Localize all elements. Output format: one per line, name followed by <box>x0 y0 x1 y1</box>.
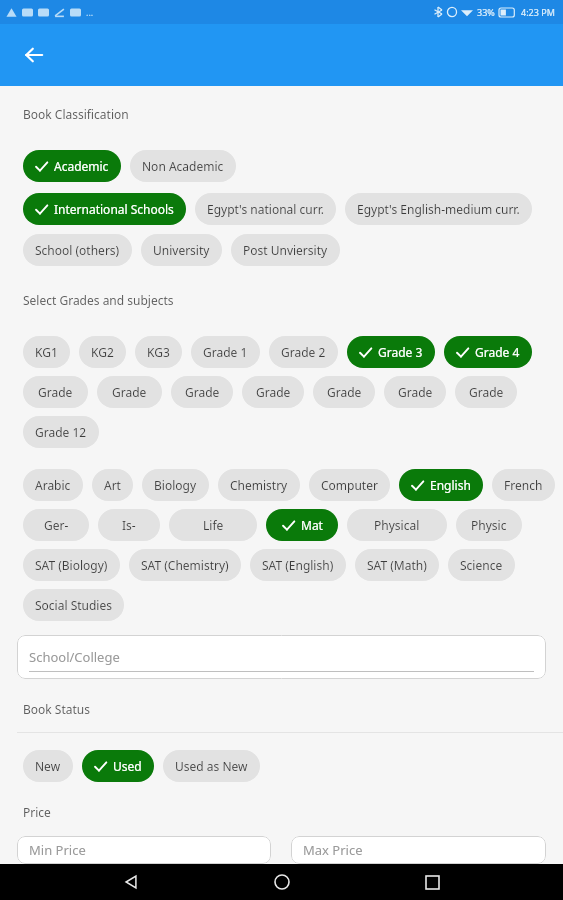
button[interactable]: Max Price <box>291 836 546 864</box>
button[interactable]: Is- <box>98 509 160 541</box>
staticText: International Schools <box>54 201 174 217</box>
button[interactable]: International Schools <box>23 193 186 225</box>
staticText: Social Studies <box>35 597 112 613</box>
button[interactable]: KG1 <box>23 336 70 368</box>
staticText: Grade <box>327 384 362 400</box>
button[interactable]: KG2 <box>79 336 126 368</box>
staticText: Arabic <box>35 477 71 493</box>
staticText: 33% <box>477 6 495 18</box>
staticText: Egypt's English-medium curr. <box>357 201 520 217</box>
button[interactable]: New <box>23 750 73 782</box>
staticText: SAT (Chemistry) <box>141 557 229 573</box>
staticText: SAT (English) <box>262 557 334 573</box>
button[interactable]: Grade 2 <box>269 336 338 368</box>
staticText: Chemistry <box>230 477 288 493</box>
staticText: Grade 3 <box>378 344 423 360</box>
button[interactable]: Computer <box>309 469 390 501</box>
button[interactable]: Arabic <box>23 469 83 501</box>
button[interactable]: Min Price <box>17 836 271 864</box>
button[interactable]: Egypt's national curr. <box>195 193 336 225</box>
staticText: Select Grades and subjects <box>23 292 174 308</box>
button[interactable]: Grade 1 <box>191 336 260 368</box>
button[interactable]: SAT (Chemistry) <box>129 549 241 581</box>
staticText: SAT (Biology) <box>35 557 108 573</box>
staticText: Grade 12 <box>35 424 87 440</box>
staticText: Grade 1 <box>203 344 248 360</box>
staticText: Grade <box>185 384 220 400</box>
staticText: Grade 2 <box>281 344 326 360</box>
staticText: Science <box>460 557 503 573</box>
staticText: New <box>35 758 61 774</box>
button[interactable]: Mat <box>266 509 338 541</box>
button[interactable]: Social Studies <box>23 589 124 621</box>
staticText: Academic <box>54 158 109 174</box>
staticText: University <box>153 242 210 258</box>
staticText: Used <box>113 758 142 774</box>
staticText: SAT (Math) <box>367 557 427 573</box>
button[interactable]: Grade <box>242 376 304 408</box>
button[interactable]: Chemistry <box>218 469 300 501</box>
button[interactable]: School (others) <box>23 234 132 266</box>
staticText: Egypt's national curr. <box>207 201 324 217</box>
button[interactable]: Academic <box>23 150 121 182</box>
button[interactable]: Used as New <box>163 750 260 782</box>
staticText: Book Classification <box>23 106 129 122</box>
button[interactable]: Post Unviersity <box>231 234 340 266</box>
button[interactable]: SAT (English) <box>250 549 346 581</box>
button[interactable]: Physic <box>456 509 522 541</box>
button[interactable]: School/College <box>17 635 546 679</box>
button[interactable]: Grade <box>313 376 375 408</box>
staticText: Price <box>23 804 51 820</box>
button[interactable]: Grade <box>23 376 88 408</box>
staticText: Grade <box>398 384 433 400</box>
button[interactable]: SAT (Math) <box>355 549 439 581</box>
staticText: Grade <box>112 384 147 400</box>
staticText: Art <box>104 477 121 493</box>
button[interactable]: Egypt's English-medium curr. <box>345 193 532 225</box>
button[interactable]: Back <box>111 864 151 900</box>
staticText: Physical <box>374 517 420 533</box>
button[interactable]: Grade <box>384 376 446 408</box>
button[interactable]: Grade 3 <box>347 336 435 368</box>
staticText: Max Price <box>303 841 363 859</box>
staticText: Grade <box>38 384 73 400</box>
staticText: ... <box>86 6 94 18</box>
button[interactable]: Biology <box>142 469 209 501</box>
staticText: Grade <box>469 384 504 400</box>
button[interactable]: KG3 <box>135 336 182 368</box>
staticText: Physic <box>471 517 507 533</box>
button[interactable]: Science <box>448 549 515 581</box>
staticText: Book Status <box>23 701 90 717</box>
staticText: Ger- <box>44 517 69 533</box>
button[interactable]: Used <box>82 750 154 782</box>
button[interactable]: English <box>399 469 483 501</box>
button[interactable]: French <box>492 469 555 501</box>
button[interactable]: University <box>141 234 222 266</box>
staticText: Grade 4 <box>475 344 520 360</box>
staticText: Min Price <box>29 841 86 859</box>
button[interactable]: Grade 12 <box>23 416 99 448</box>
staticText: Post Unviersity <box>243 242 328 258</box>
button[interactable]: Grade 4 <box>444 336 532 368</box>
staticText: KG1 <box>35 344 58 360</box>
button[interactable]: Grade <box>171 376 233 408</box>
button[interactable]: Back <box>12 33 56 77</box>
button[interactable]: Life <box>169 509 257 541</box>
button[interactable]: SAT (Biology) <box>23 549 120 581</box>
button[interactable]: Grade <box>97 376 162 408</box>
staticText: Used as New <box>175 758 248 774</box>
button[interactable]: Grade <box>455 376 517 408</box>
staticText: Biology <box>154 477 197 493</box>
staticText: Mat <box>301 517 323 533</box>
button[interactable]: Art <box>92 469 133 501</box>
button[interactable]: Recents <box>412 864 452 900</box>
button[interactable]: Home <box>262 864 302 900</box>
staticText: Life <box>203 517 224 533</box>
staticText: School (others) <box>35 242 120 258</box>
button[interactable]: Non Academic <box>130 150 236 182</box>
staticText: French <box>504 477 543 493</box>
staticText: Computer <box>321 477 378 493</box>
staticText: Grade <box>256 384 291 400</box>
button[interactable]: Ger- <box>23 509 89 541</box>
button[interactable]: Physical <box>347 509 447 541</box>
